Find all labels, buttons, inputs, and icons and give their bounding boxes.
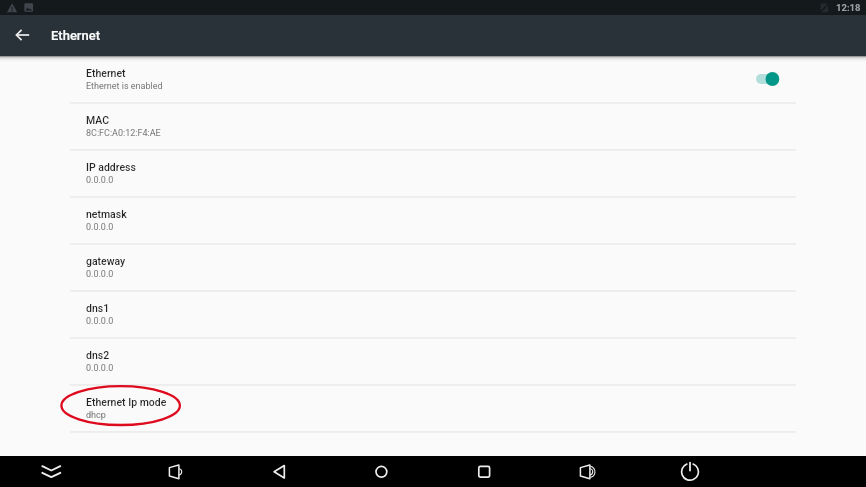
staticText: 0.0.0.0 xyxy=(86,269,114,280)
button[interactable]: Ethernet Ip mode xyxy=(0,384,866,431)
button[interactable]: Home xyxy=(366,456,397,487)
button[interactable]: Volume down xyxy=(160,456,191,487)
staticText: IP address xyxy=(86,161,136,173)
staticText: 0.0.0.0 xyxy=(86,363,114,374)
button[interactable]: Power xyxy=(674,456,705,487)
staticText: dns2 xyxy=(86,349,110,361)
staticText: dns1 xyxy=(86,302,110,314)
button[interactable]: Back xyxy=(264,456,295,487)
staticText: Ethernet Ip mode xyxy=(86,396,167,408)
button[interactable]: netmask xyxy=(0,196,866,243)
button[interactable]: Navigate up xyxy=(11,23,35,47)
button[interactable]: Recent apps xyxy=(469,456,500,487)
button[interactable]: dns2 xyxy=(0,337,866,384)
button[interactable]: dns1 xyxy=(0,290,866,337)
button[interactable]: Volume up xyxy=(571,456,602,487)
staticText: 0.0.0.0 xyxy=(86,316,114,327)
button[interactable]: Ethernet on/off xyxy=(756,65,784,93)
staticText: Ethernet is enabled xyxy=(86,81,163,92)
button[interactable]: Ethernet xyxy=(0,55,866,102)
staticText: Ethernet xyxy=(51,28,100,43)
staticText: dhcp xyxy=(86,410,106,421)
button[interactable]: gateway xyxy=(0,243,866,290)
staticText: Ethernet xyxy=(86,67,126,79)
staticText: netmask xyxy=(86,208,127,220)
staticText: MAC xyxy=(86,114,110,126)
staticText: gateway xyxy=(86,255,126,267)
staticText: 8C:FC:A0:12:F4:AE xyxy=(86,128,161,139)
staticText: 12:18 xyxy=(836,2,861,13)
button[interactable]: Hide navigation bar xyxy=(36,456,67,487)
staticText: 0.0.0.0 xyxy=(86,175,114,186)
button[interactable]: IP address xyxy=(0,149,866,196)
button[interactable]: MAC xyxy=(0,102,866,149)
staticText: 0.0.0.0 xyxy=(86,222,114,233)
